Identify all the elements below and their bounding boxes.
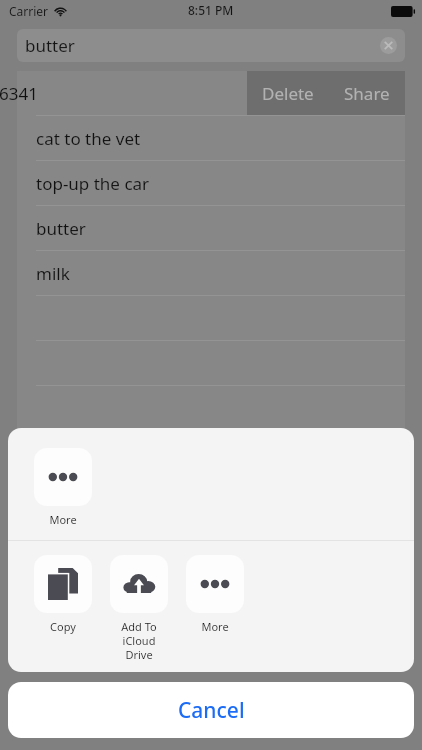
staticText: milk [36,262,70,285]
button[interactable]: butter [17,29,405,62]
staticText: More [201,619,229,634]
staticText: Copy [50,619,76,634]
button[interactable]: 6341 [17,71,247,115]
staticText: Add To iCloud Drive [108,619,170,662]
staticText: Carrier [9,3,49,19]
button[interactable]: Copy [32,555,94,634]
button[interactable]: Delete [247,71,328,115]
button[interactable]: Add To iCloud Drive [108,555,170,662]
staticText: Delete [262,82,314,105]
button[interactable]: More [32,448,94,527]
staticText: Share [344,82,390,105]
button[interactable]: More [184,555,246,634]
staticText: butter [25,34,75,57]
button[interactable]: milk [17,251,405,295]
staticText: cat to the vet [36,127,141,150]
staticText: 6341 [0,82,38,105]
button[interactable]: butter [17,206,405,250]
staticText: butter [36,217,86,240]
button[interactable]: top-up the car [17,161,405,205]
button[interactable]: Share [328,71,405,115]
button[interactable]: cat to the vet [17,116,405,160]
staticText: 8:51 PM [188,2,234,18]
staticText: Cancel [178,696,245,725]
button[interactable]: Clear text [380,37,397,54]
staticText: More [49,512,77,527]
button[interactable]: Cancel [8,682,414,738]
staticText: top-up the car [36,172,150,195]
